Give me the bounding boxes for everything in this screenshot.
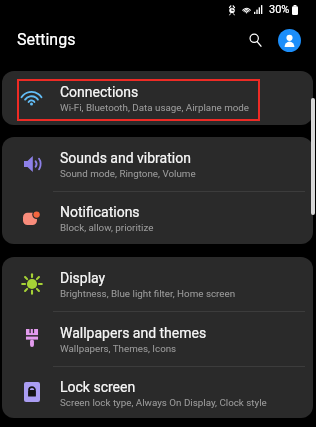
button[interactable]: Wallpapers and themes [2, 312, 313, 366]
staticText: Sounds and vibration [60, 150, 191, 166]
staticText: Screen lock type, Always On Display, Clo… [60, 397, 267, 408]
button[interactable]: Notifications [2, 192, 313, 244]
button[interactable]: Sounds and vibration [2, 137, 313, 191]
staticText: Wallpapers, Themes, Icons [60, 343, 177, 354]
staticText: Wi-Fi, Bluetooth, Data usage, Airplane m… [60, 102, 250, 113]
staticText: Connections [60, 84, 139, 100]
staticText: Lock screen [60, 379, 136, 395]
staticText: Sound mode, Ringtone, Volume [60, 168, 196, 179]
staticText: Display [60, 270, 106, 286]
button[interactable]: Connections [2, 71, 313, 125]
staticText: Block, allow, prioritize [60, 222, 154, 233]
button[interactable]: Display [2, 257, 313, 311]
staticText: Notifications [60, 204, 140, 220]
staticText: Settings [17, 30, 76, 49]
staticText: Wallpapers and themes [60, 325, 207, 341]
staticText: Brightness, Blue light filter, Home scre… [60, 288, 236, 299]
button[interactable]: Lock screen [2, 367, 313, 418]
staticText: 30% [269, 3, 290, 16]
button[interactable]: Search [239, 24, 271, 56]
button[interactable]: Account [278, 29, 301, 52]
